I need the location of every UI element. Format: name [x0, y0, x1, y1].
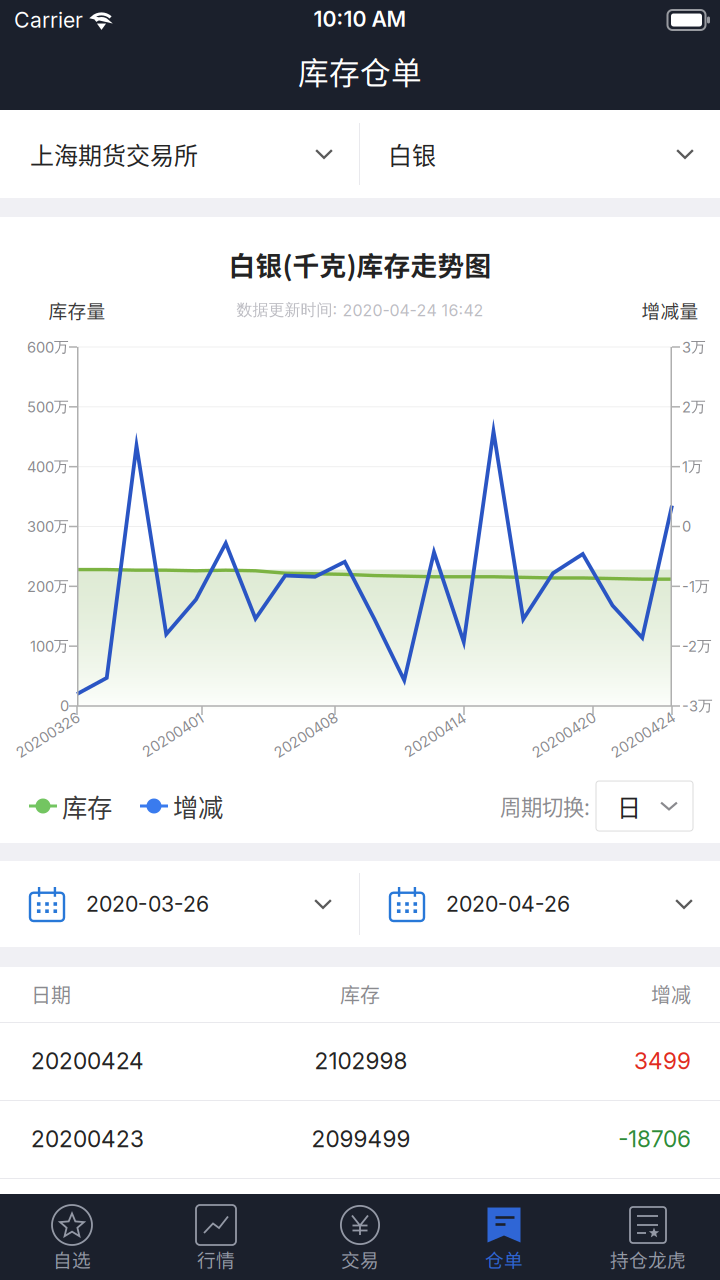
button[interactable]: 上海期货交易所	[0, 110, 359, 198]
button[interactable]: 仓单	[432, 1194, 576, 1280]
staticText: 库存量	[48, 296, 105, 323]
staticText: 500万	[27, 398, 69, 416]
staticText: 10:10 AM	[313, 6, 406, 32]
staticText: 增减量	[641, 296, 698, 323]
staticText: -3万	[682, 697, 713, 715]
staticText: 20200424	[607, 726, 679, 744]
staticText: 白银	[388, 137, 436, 171]
button[interactable]: 自选	[0, 1194, 144, 1280]
staticText: 0	[60, 697, 69, 715]
staticText: 20200420	[528, 726, 600, 744]
staticText: 600万	[27, 338, 69, 356]
button[interactable]: 2020-03-26	[0, 861, 359, 947]
staticText: 持仓龙虎	[610, 1245, 686, 1272]
button[interactable]: 交易	[288, 1194, 432, 1280]
staticText: 日期	[31, 979, 71, 1008]
staticText: 白银(千克)库存走势图	[228, 245, 491, 283]
staticText: 2020-04-26	[446, 891, 570, 917]
staticText: 20200401	[138, 726, 207, 744]
button[interactable]: 行情	[144, 1194, 288, 1280]
button[interactable]: 持仓龙虎	[576, 1194, 720, 1280]
staticText: 100万	[30, 637, 69, 655]
staticText: -18706	[618, 1125, 691, 1153]
button[interactable]: 2020-04-26	[360, 861, 720, 947]
staticText: 日	[617, 789, 641, 823]
staticText: 数据更新时间: 2020-04-24 16:42	[236, 300, 483, 320]
staticText: 20200408	[270, 726, 342, 744]
staticText: 2020-03-26	[86, 891, 209, 917]
button[interactable]: 日	[596, 781, 693, 831]
staticText: -2万	[682, 637, 712, 655]
staticText: 2102998	[314, 1047, 407, 1075]
staticText: 库存	[340, 979, 380, 1008]
staticText: 增减	[651, 979, 691, 1008]
staticText: 自选	[53, 1245, 91, 1272]
staticText: 交易	[341, 1245, 379, 1272]
staticText: 库存	[62, 788, 112, 824]
staticText: 3499	[634, 1047, 691, 1075]
staticText: 300万	[27, 517, 69, 536]
staticText: 200万	[27, 577, 69, 596]
staticText: 20200424	[31, 1047, 144, 1075]
staticText: 周期切换:	[500, 791, 590, 821]
button[interactable]: 20200423	[0, 1101, 720, 1178]
staticText: -1万	[682, 577, 710, 596]
staticText: 1万	[682, 457, 703, 476]
staticText: 增减	[173, 788, 223, 824]
staticText: 行情	[197, 1245, 235, 1272]
staticText: 0	[682, 518, 691, 535]
staticText: 20200326	[12, 726, 84, 744]
staticText: 库存仓单	[298, 49, 422, 93]
staticText: 2万	[682, 398, 706, 416]
button[interactable]: 20200424	[0, 1023, 720, 1100]
staticText: 20200423	[31, 1125, 144, 1153]
staticText: 3万	[682, 338, 706, 356]
staticText: 400万	[27, 457, 69, 476]
staticText: Carrier	[14, 7, 83, 33]
button[interactable]: 白银	[360, 110, 720, 198]
staticText: 仓单	[485, 1245, 523, 1272]
staticText: 2099499	[311, 1125, 410, 1153]
staticText: 上海期货交易所	[30, 137, 198, 171]
staticText: 20200414	[400, 726, 469, 744]
